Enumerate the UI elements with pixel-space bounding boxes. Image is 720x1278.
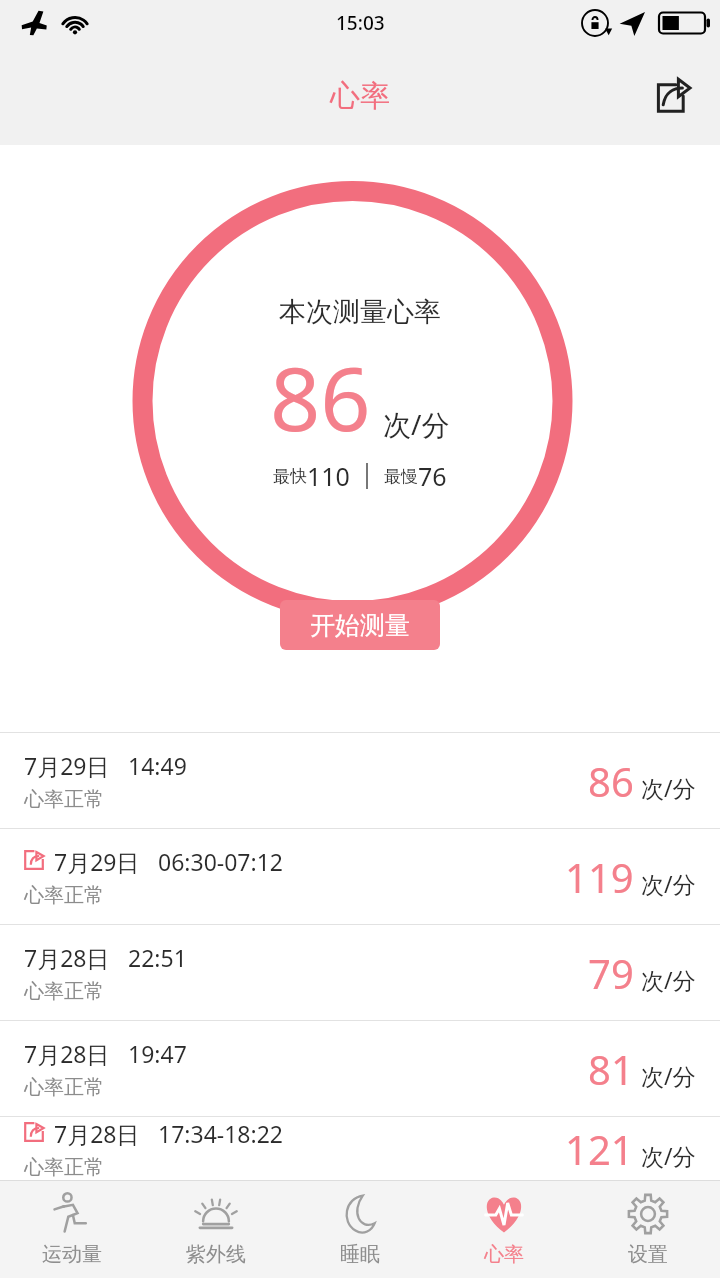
staticText: 次/分 [383,405,450,443]
button[interactable]: 运动量 [0,1180,144,1278]
button[interactable]: 设置 [576,1180,720,1278]
staticText: 心率正常 [24,1075,104,1100]
staticText: 7月29日 [54,846,140,877]
staticText: 76 [418,459,447,493]
staticText: 次/分 [641,868,696,899]
staticText: 本次测量心率 [279,295,441,329]
staticText: 最慢 [384,466,418,487]
staticText: 15:03 [336,10,385,36]
staticText: 运动量 [42,1242,102,1267]
staticText: 心率正常 [24,787,104,812]
staticText: 开始测量 [310,610,410,641]
button[interactable]: 分享 [644,68,700,124]
staticText: 14:49 [128,750,187,781]
staticText: 19:47 [128,1038,187,1069]
staticText: 81 [588,1042,634,1096]
staticText: 22:51 [128,942,187,973]
staticText: 86 [588,754,634,808]
staticText: 心率 [484,1242,524,1267]
button[interactable]: 睡眠 [288,1180,432,1278]
staticText: 心率正常 [24,979,104,1004]
button[interactable]: 紫外线 [144,1180,288,1278]
staticText: 设置 [628,1242,668,1267]
staticText: 17:34-18:22 [158,1118,283,1149]
staticText: 次/分 [641,772,696,803]
staticText: 最快 [273,466,307,487]
button[interactable]: 7月28日 [0,1117,720,1180]
button[interactable]: 开始测量 [280,600,440,650]
staticText: 心率 [330,77,390,115]
staticText: 7月28日 [24,942,110,973]
staticText: 7月29日 [24,750,110,781]
staticText: 紫外线 [186,1242,246,1267]
staticText: 次/分 [641,964,696,995]
button[interactable]: 7月29日 [0,733,720,828]
staticText: 119 [565,850,634,904]
staticText: 次/分 [641,1060,696,1091]
staticText: 110 [307,459,350,493]
staticText: 06:30-07:12 [158,846,283,877]
button[interactable]: 心率 [432,1180,576,1278]
staticText: 心率正常 [24,1155,104,1180]
staticText: 次/分 [641,1140,696,1171]
staticText: 心率正常 [24,883,104,908]
staticText: 睡眠 [340,1242,380,1267]
button[interactable]: 7月29日 [0,829,720,924]
staticText: 7月28日 [24,1038,110,1069]
button[interactable]: 7月28日 [0,925,720,1020]
staticText: 7月28日 [54,1118,140,1149]
staticText: 79 [588,946,634,1000]
staticText: 121 [565,1122,634,1176]
staticText: 86 [270,337,371,457]
button[interactable]: 7月28日 [0,1021,720,1116]
